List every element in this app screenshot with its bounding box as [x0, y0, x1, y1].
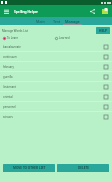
- staticText: oriental: [3, 95, 13, 99]
- button[interactable]: MOVE TO OTHER LIST: [3, 164, 55, 172]
- button[interactable]: continuum: [0, 52, 112, 61]
- staticText: HELP: [99, 29, 107, 33]
- button[interactable]: Main: [31, 17, 50, 25]
- staticText: guerilla: [3, 75, 13, 79]
- staticText: scissors: [3, 115, 13, 119]
- staticText: lieutenant: [3, 85, 16, 89]
- button[interactable]: february: [0, 62, 112, 71]
- button[interactable]: DELETE: [57, 164, 109, 172]
- button[interactable]: personnel: [0, 102, 112, 111]
- button[interactable]: scissors: [0, 112, 112, 121]
- button[interactable]: Word notes: [101, 7, 109, 15]
- staticText: MOVE TO OTHER LIST: [13, 166, 46, 170]
- button[interactable]: Manage: [63, 17, 82, 25]
- button[interactable]: Test: [47, 17, 66, 25]
- button[interactable]: baccalaureate: [0, 42, 112, 51]
- staticText: Learned: [59, 36, 70, 40]
- staticText: DELETE: [78, 166, 89, 170]
- button[interactable]: lieutenant: [0, 82, 112, 91]
- staticText: personnel: [3, 105, 16, 109]
- staticText: Manage: [65, 19, 80, 24]
- staticText: baccalaureate: [3, 45, 21, 49]
- button[interactable]: To Learn: [3, 35, 19, 41]
- staticText: Test: [53, 19, 61, 24]
- button[interactable]: Share: [88, 7, 96, 15]
- staticText: To Learn: [7, 36, 19, 40]
- staticText: Manage Words List: [2, 29, 28, 33]
- button[interactable]: oriental: [0, 92, 112, 101]
- staticText: Main: [36, 19, 45, 24]
- staticText: continuum: [3, 55, 17, 59]
- staticText: february: [3, 65, 14, 69]
- button[interactable]: guerilla: [0, 72, 112, 81]
- button[interactable]: Open navigation menu: [2, 7, 10, 15]
- button[interactable]: HELP: [96, 27, 110, 34]
- staticText: Spelling Helper: [14, 9, 38, 13]
- button[interactable]: Learned: [55, 35, 70, 41]
